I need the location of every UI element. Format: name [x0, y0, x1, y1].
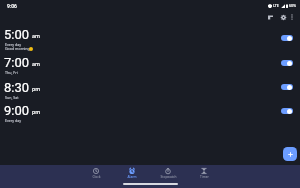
staticText: pm: [32, 108, 41, 115]
button[interactable]: Stopwatch: [150, 165, 186, 188]
button[interactable]: 5:00: [0, 26, 300, 54]
staticText: Alarm: [127, 175, 137, 179]
button[interactable]: Toggle alarm: [281, 108, 293, 114]
button[interactable]: Toggle alarm: [281, 84, 293, 90]
staticText: 5:00: [4, 27, 30, 42]
staticText: Every day: [5, 118, 22, 123]
button[interactable]: Add alarm: [283, 147, 297, 161]
button[interactable]: Timer: [186, 165, 222, 188]
button[interactable]: Clock: [78, 165, 114, 188]
button[interactable]: 9:00: [0, 102, 300, 126]
staticText: Every day: [5, 42, 22, 47]
staticText: 8:30: [4, 80, 30, 95]
staticText: 9:00: [4, 103, 30, 118]
button[interactable]: Toggle alarm: [281, 35, 293, 41]
button[interactable]: Settings: [278, 12, 288, 22]
button[interactable]: 7:00: [0, 54, 300, 78]
staticText: Good morning: [5, 46, 30, 51]
button[interactable]: Alarm: [114, 165, 150, 188]
staticText: pm: [32, 85, 41, 92]
staticText: Thu, Fri: [5, 70, 18, 75]
staticText: 60%: [289, 3, 297, 8]
staticText: Clock: [92, 175, 101, 179]
staticText: Stopwatch: [160, 175, 177, 179]
staticText: Sun, Sat: [5, 95, 19, 100]
button[interactable]: Toggle alarm: [281, 60, 293, 66]
staticText: LTE: [273, 3, 279, 8]
button[interactable]: 8:30: [0, 79, 300, 103]
button[interactable]: More options: [287, 12, 297, 22]
staticText: am: [32, 60, 40, 67]
staticText: Timer: [200, 175, 209, 179]
staticText: 9:06: [7, 3, 17, 9]
staticText: 7:00: [4, 55, 30, 70]
button[interactable]: Sort: [265, 12, 275, 22]
staticText: am: [32, 32, 40, 39]
